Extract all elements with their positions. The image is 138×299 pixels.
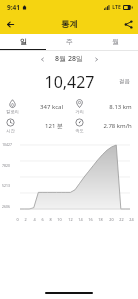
staticText: 2.78 km/h <box>103 122 132 130</box>
staticText: 121 분 <box>45 122 63 130</box>
staticText: 10 <box>57 217 62 222</box>
staticText: 347 kcal <box>40 103 63 111</box>
button[interactable]: Share <box>118 14 138 34</box>
staticText: 20 <box>109 217 114 222</box>
button[interactable]: 시간 <box>0 116 69 135</box>
staticText: 2606 <box>2 204 10 209</box>
staticText: 4 <box>33 217 36 222</box>
button[interactable]: 거리 <box>69 97 138 116</box>
staticText: 8 <box>49 217 52 222</box>
staticText: 통계 <box>61 19 78 30</box>
staticText: 14 <box>78 217 83 222</box>
staticText: 칼로리 <box>6 109 19 114</box>
button[interactable]: 주 <box>46 34 92 49</box>
button[interactable]: 속도 <box>69 116 138 135</box>
staticText: 8월 28일 <box>55 54 83 64</box>
staticText: 10,427 <box>44 71 95 91</box>
staticText: 속도 <box>75 128 84 133</box>
staticText: 일 <box>20 37 27 46</box>
staticText: LTE <box>112 4 121 11</box>
staticText: 2 <box>24 217 27 222</box>
staticText: 6 <box>41 217 44 222</box>
staticText: 0 <box>16 217 19 222</box>
button[interactable]: Back <box>0 14 20 34</box>
button[interactable]: 일 <box>0 34 46 49</box>
button[interactable]: Next day <box>89 52 103 66</box>
staticText: 8.13 km <box>109 103 132 111</box>
staticText: 9:41 <box>7 3 20 12</box>
staticText: 22 <box>119 217 124 222</box>
staticText: 18 <box>98 217 103 222</box>
staticText: 시간 <box>6 128 15 133</box>
staticText: 월 <box>112 37 119 46</box>
staticText: 걸음 <box>119 78 130 85</box>
staticText: 거리 <box>75 109 84 114</box>
staticText: 24 <box>129 217 134 222</box>
staticText: 5213 <box>2 183 10 188</box>
staticText: 7820 <box>2 163 10 168</box>
button[interactable]: Previous day <box>35 52 49 66</box>
staticText: 12 <box>68 217 73 222</box>
staticText: 주 <box>66 37 73 46</box>
button[interactable]: 칼로리 <box>0 97 69 116</box>
staticText: 16 <box>88 217 93 222</box>
button[interactable]: 월 <box>92 34 138 49</box>
staticText: 10427 <box>2 142 12 147</box>
